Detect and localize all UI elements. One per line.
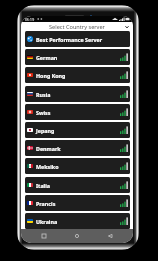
staticText: Swiss: [36, 109, 51, 116]
button[interactable]: Meksiko: [25, 158, 130, 174]
button[interactable]: Expand: [124, 24, 130, 30]
staticText: Best Performance Server: [36, 36, 103, 43]
staticText: Italia: [36, 182, 50, 189]
button[interactable]: Swiss: [25, 104, 130, 120]
button[interactable]: Italia: [25, 177, 130, 193]
button[interactable]: Denmark: [25, 140, 130, 156]
button[interactable]: Hong Kong: [25, 67, 130, 83]
staticText: Hong Kong: [36, 72, 66, 79]
staticText: Denmark: [36, 145, 61, 152]
button[interactable]: German: [25, 49, 130, 65]
staticText: Jepang: [36, 127, 55, 134]
button[interactable]: Rusia: [25, 86, 130, 102]
button[interactable]: Best Performance Server: [25, 31, 130, 47]
staticText: Select Country server: [49, 23, 105, 31]
button[interactable]: Jepang: [25, 122, 130, 138]
button[interactable]: Prancis: [25, 195, 130, 211]
button[interactable]: Recent apps: [34, 229, 54, 243]
button[interactable]: Back: [100, 229, 120, 243]
staticText: German: [36, 54, 58, 61]
staticText: Meksiko: [36, 163, 59, 170]
staticText: Prancis: [36, 200, 56, 207]
button[interactable]: Select Country server: [21, 22, 133, 31]
button[interactable]: Ukraina: [25, 213, 130, 229]
staticText: Ukraina: [36, 218, 58, 225]
staticText: Rusia: [36, 91, 51, 98]
button[interactable]: Home: [67, 229, 87, 243]
staticText: 18:19: [24, 17, 35, 22]
